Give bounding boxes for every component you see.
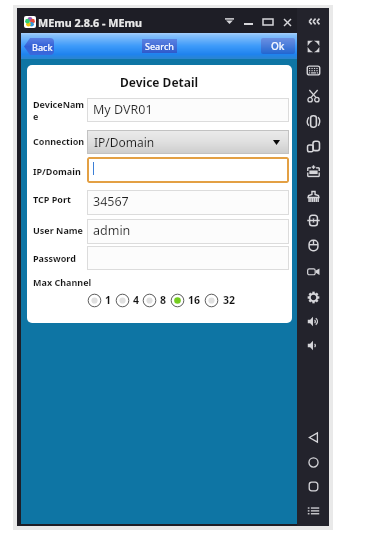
button[interactable]: Mouse	[302, 234, 324, 256]
button[interactable]	[142, 291, 170, 309]
staticText: Connection	[33, 135, 85, 147]
button[interactable]: IP/Domain	[87, 130, 289, 154]
button[interactable]: Volume down	[302, 334, 324, 356]
button[interactable]: Record video	[302, 260, 324, 282]
button[interactable]: My DVR01	[87, 98, 289, 122]
button[interactable]: Shake	[302, 185, 324, 207]
staticText: 8	[160, 293, 167, 307]
button[interactable]: Transfer	[302, 209, 324, 231]
button[interactable]	[87, 157, 289, 183]
staticText: IP/Domain	[33, 165, 81, 177]
button[interactable]: Recent apps	[302, 475, 324, 497]
button[interactable]: Back	[24, 38, 54, 55]
staticText: Ok	[271, 39, 285, 53]
button[interactable]: Maximize	[260, 14, 276, 30]
button[interactable]: Fullscreen	[302, 35, 324, 57]
staticText: Back	[32, 41, 53, 53]
button[interactable]: Minimize	[240, 13, 256, 29]
button[interactable]	[87, 291, 115, 309]
staticText: IP/Domain	[94, 134, 155, 150]
button[interactable]: Install APK	[302, 160, 324, 182]
staticText: 34567	[93, 193, 129, 210]
button[interactable]: Rotate	[302, 110, 324, 132]
staticText: MEmu 2.8.6 - MEmu	[38, 15, 143, 30]
button[interactable]: Ok	[261, 38, 295, 54]
button[interactable]: admin	[87, 219, 289, 244]
staticText: TCP Port	[33, 193, 71, 205]
button[interactable]: More options	[221, 13, 237, 29]
staticText: 32	[223, 293, 236, 307]
button[interactable]	[114, 291, 142, 309]
button[interactable]: Cut	[302, 84, 324, 106]
button[interactable]: Close	[279, 14, 295, 30]
staticText: Max Channel	[33, 276, 92, 288]
button[interactable]: Home	[302, 451, 324, 473]
button[interactable]: Search	[142, 39, 177, 53]
staticText: Search	[145, 40, 174, 52]
button[interactable]: Settings	[302, 286, 324, 308]
button[interactable]: Collapse	[302, 10, 324, 32]
button[interactable]: 34567	[87, 190, 289, 215]
button[interactable]	[169, 291, 197, 309]
button[interactable]	[87, 246, 289, 270]
staticText: Password	[33, 252, 76, 264]
staticText: 1	[105, 293, 112, 307]
button[interactable]: Keyboard	[302, 59, 324, 81]
staticText: User Name	[33, 224, 83, 236]
button[interactable]: Back	[302, 426, 324, 448]
staticText: 4	[133, 293, 140, 307]
button[interactable]	[204, 291, 232, 309]
staticText: admin	[93, 222, 131, 239]
staticText: Device Detail	[120, 74, 199, 90]
button[interactable]: Multi window	[302, 135, 324, 157]
staticText: DeviceNam	[33, 98, 85, 110]
staticText: e	[33, 110, 39, 122]
button[interactable]: Volume up	[302, 310, 324, 332]
staticText: 16	[188, 293, 201, 307]
button[interactable]: Menu	[302, 499, 324, 521]
staticText: My DVR01	[93, 101, 153, 118]
